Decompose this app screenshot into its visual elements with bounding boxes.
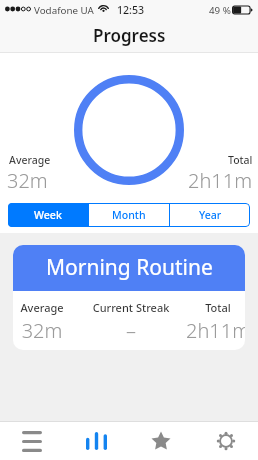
button[interactable]: Morning Routine xyxy=(13,245,245,350)
staticText: Current Streak xyxy=(76,300,186,315)
staticText: 32m xyxy=(7,167,48,194)
button[interactable]: Menu xyxy=(0,422,64,460)
staticText: Week xyxy=(34,208,62,222)
staticText: Vodafone UA xyxy=(34,4,94,17)
staticText: 2h11m xyxy=(163,317,245,344)
staticText: 12:53 xyxy=(117,3,145,17)
button[interactable]: Favourites xyxy=(128,422,193,460)
staticText: 32m xyxy=(13,317,97,344)
staticText: 49 % xyxy=(209,4,231,17)
staticText: Total xyxy=(163,300,245,315)
button[interactable]: Statistics xyxy=(64,422,128,460)
staticText: Progress xyxy=(93,24,166,47)
staticText: Average xyxy=(13,300,97,315)
staticText: Total xyxy=(228,153,253,167)
staticText: Year xyxy=(199,208,222,222)
button[interactable]: Year xyxy=(170,203,250,227)
staticText: 2h11m xyxy=(188,167,253,194)
staticText: Morning Routine xyxy=(46,253,213,282)
staticText: Month xyxy=(112,208,146,222)
staticText: Average xyxy=(9,153,51,167)
staticText: – xyxy=(76,317,186,344)
button[interactable]: Week xyxy=(8,203,88,227)
button[interactable]: Settings xyxy=(193,422,258,460)
button[interactable]: Month xyxy=(89,203,169,227)
